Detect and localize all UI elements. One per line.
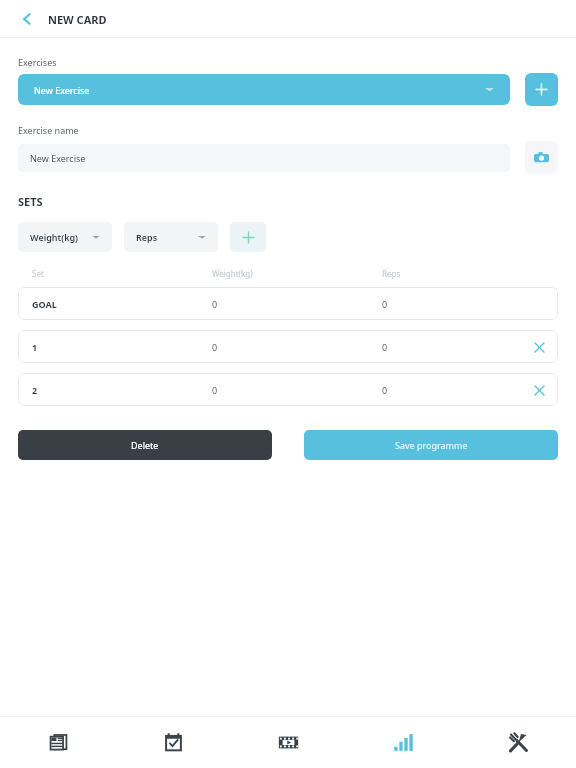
staticText: 1	[32, 341, 212, 353]
button[interactable]: Videos	[231, 716, 346, 768]
staticText: Weight(kg)	[30, 231, 92, 243]
button[interactable]: New Exercise	[18, 144, 510, 172]
staticText: New Exercise	[34, 84, 485, 96]
staticText: New Exercise	[30, 152, 86, 164]
staticText: 0	[382, 384, 524, 396]
button[interactable]: 2	[18, 373, 558, 406]
staticText: 0	[212, 384, 382, 396]
staticText: Save programme	[395, 439, 468, 451]
button[interactable]: Save programme	[304, 430, 558, 460]
staticText: GOAL	[32, 298, 212, 310]
staticText: 0	[382, 341, 524, 353]
staticText: Exercise name	[18, 124, 79, 136]
button[interactable]: Delete	[18, 430, 272, 460]
button[interactable]: Calendar	[116, 716, 231, 768]
staticText: 0	[212, 298, 382, 310]
staticText: Weight(kg)	[212, 268, 382, 279]
button[interactable]: Nutrition	[461, 716, 576, 768]
staticText: Set	[32, 268, 212, 279]
button[interactable]: Remove set 1	[524, 332, 554, 362]
button[interactable]: Weight(kg)	[18, 222, 112, 252]
button[interactable]: Add metric	[230, 222, 266, 252]
staticText: 2	[32, 384, 212, 396]
button[interactable]: Remove set 2	[524, 375, 554, 405]
staticText: 0	[382, 298, 558, 310]
button[interactable]: 1	[18, 330, 558, 363]
staticText: Delete	[131, 439, 159, 451]
button[interactable]: Take photo	[525, 141, 558, 174]
staticText: Reps	[136, 231, 198, 243]
button[interactable]: Add exercise	[525, 73, 558, 106]
button[interactable]: New Exercise	[18, 74, 510, 105]
staticText: NEW CARD	[48, 12, 107, 27]
button[interactable]: Statistics	[346, 716, 461, 768]
button[interactable]: GOAL	[18, 287, 558, 320]
button[interactable]: Back	[14, 6, 40, 32]
button[interactable]: Programmes	[0, 716, 116, 768]
staticText: 0	[212, 341, 382, 353]
staticText: Reps	[382, 268, 401, 279]
staticText: SETS	[18, 194, 43, 209]
staticText: Exercises	[18, 56, 57, 68]
button[interactable]: Reps	[124, 222, 218, 252]
